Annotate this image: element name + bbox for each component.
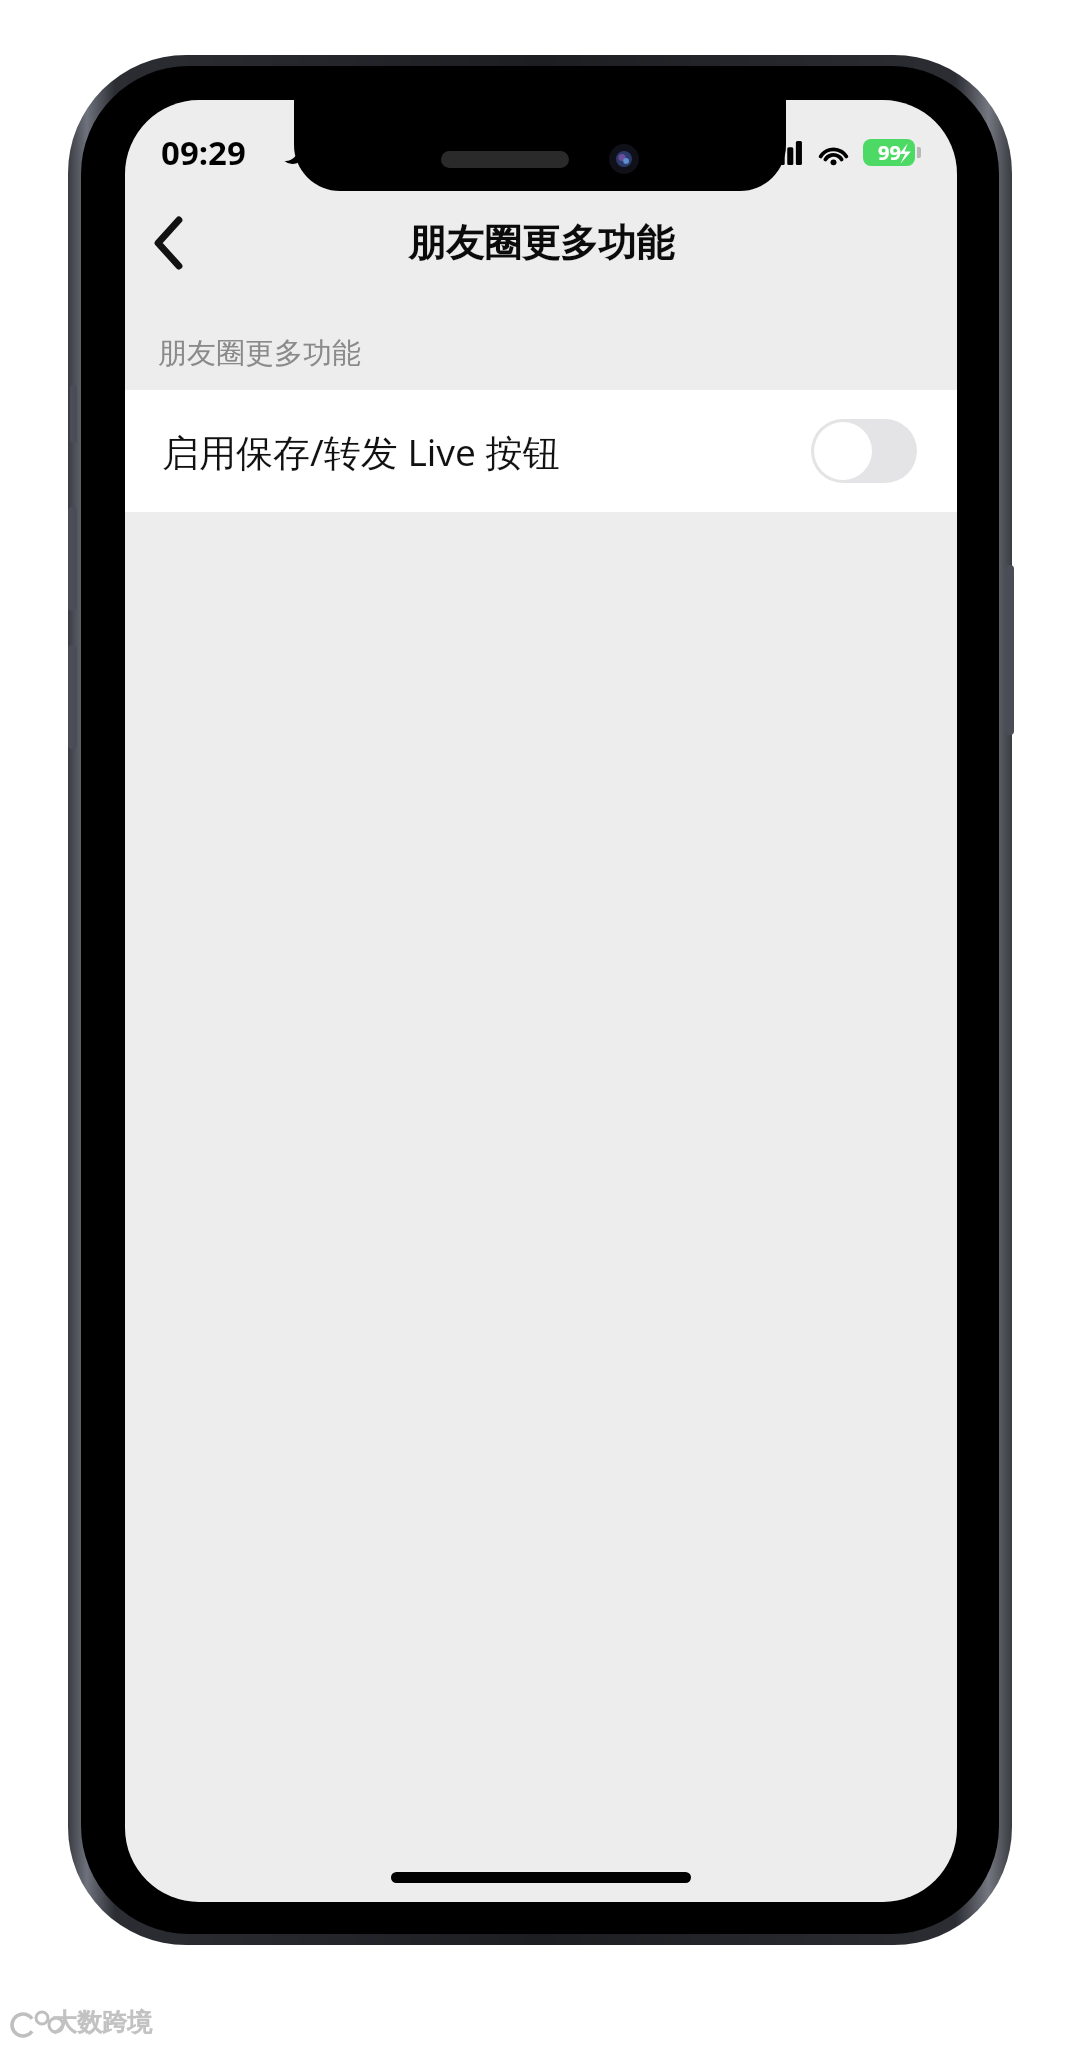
staticText: 大数跨境 xyxy=(52,2007,152,2038)
staticText: 朋友圈更多功能 xyxy=(158,335,361,372)
staticText: 99 xyxy=(878,139,901,166)
staticText: 启用保存/转发 Live 按钮 xyxy=(162,426,811,477)
staticText: 09:29 xyxy=(161,130,246,175)
button[interactable]: 返回 xyxy=(125,199,213,287)
button[interactable]: 启用保存/转发 Live 按钮 xyxy=(125,390,957,512)
button[interactable]: 启用保存/转发 Live 按钮开关 xyxy=(811,419,917,483)
staticText: 朋友圈更多功能 xyxy=(408,219,674,267)
